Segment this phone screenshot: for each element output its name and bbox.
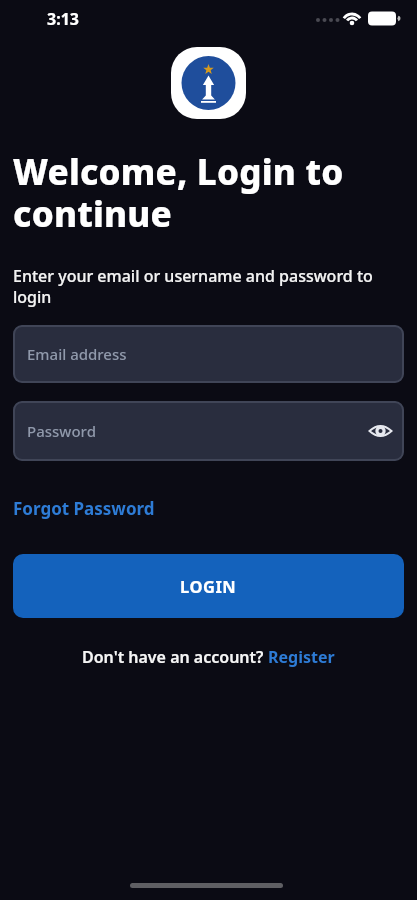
- staticText: 3:13: [47, 8, 79, 30]
- button[interactable]: [369, 421, 392, 441]
- staticText: Don't have an account?: [82, 646, 268, 668]
- button[interactable]: Email address: [13, 325, 404, 383]
- button[interactable]: Register: [268, 646, 335, 668]
- staticText: Password: [27, 421, 96, 441]
- button[interactable]: LOGIN: [13, 554, 404, 618]
- staticText: Welcome, Login to continue: [13, 148, 344, 237]
- staticText: Email address: [27, 344, 127, 364]
- button[interactable]: Password: [13, 401, 404, 461]
- button[interactable]: Forgot Password: [13, 497, 155, 520]
- staticText: LOGIN: [180, 575, 237, 597]
- staticText: Enter your email or username and passwor…: [13, 265, 373, 308]
